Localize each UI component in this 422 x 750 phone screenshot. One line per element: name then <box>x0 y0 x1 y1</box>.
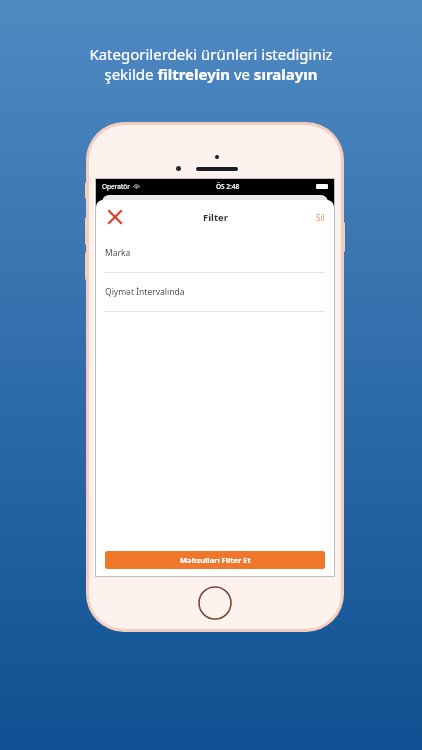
button[interactable]: Sil <box>307 206 334 229</box>
staticText: ÖS 2:48 <box>216 182 240 191</box>
staticText: Sil <box>316 212 325 223</box>
button[interactable]: Home <box>198 586 232 620</box>
button[interactable]: Qiymət İntervalında <box>96 273 334 312</box>
staticText: Kategorilerdeki ürünleri istediginiz şek… <box>26 44 396 84</box>
staticText: Filter <box>203 211 228 224</box>
staticText: Operatör <box>102 182 130 191</box>
button[interactable]: Məhsulları Filter Et <box>105 551 325 569</box>
button[interactable]: Marka <box>96 234 334 273</box>
staticText: Məhsulları Filter Et <box>180 555 251 565</box>
button[interactable]: Close <box>102 204 128 230</box>
staticText: Marka <box>105 247 131 259</box>
staticText: Qiymət İntervalında <box>105 286 185 298</box>
